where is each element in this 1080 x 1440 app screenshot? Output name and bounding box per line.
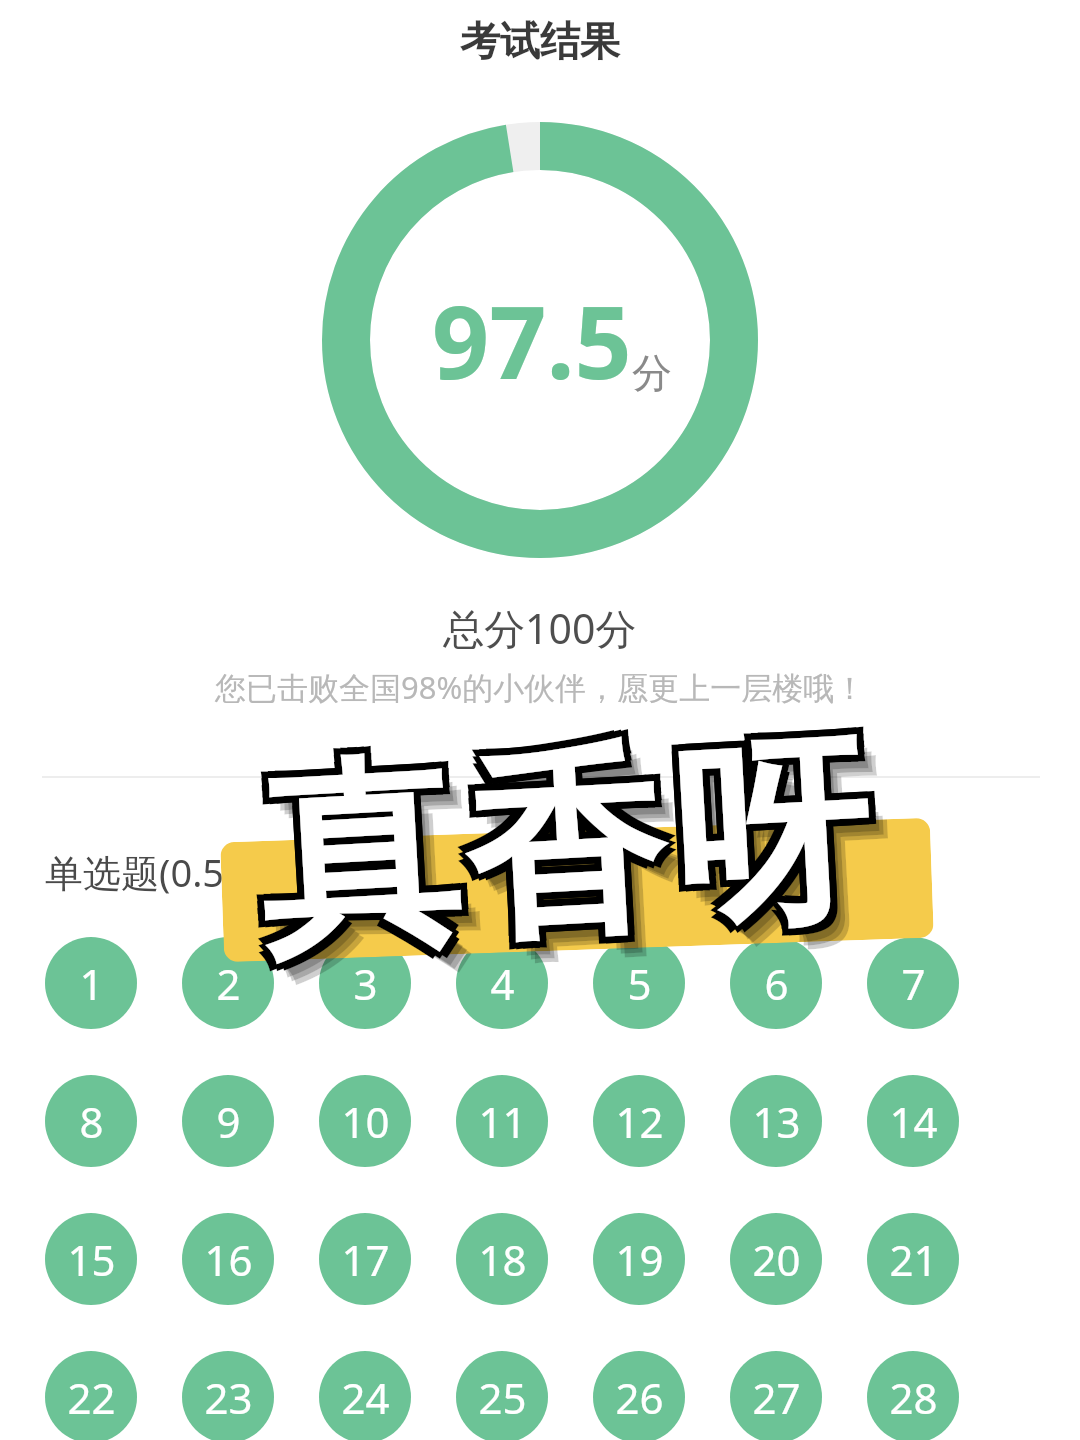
staticText: 97.5	[432, 272, 632, 408]
button[interactable]: 15	[45, 1213, 137, 1305]
button[interactable]: 17	[319, 1213, 411, 1305]
staticText: 真香呀	[268, 726, 899, 1012]
button[interactable]: 7	[867, 937, 959, 1029]
staticText: 总分100分	[443, 600, 637, 656]
button[interactable]: 24	[319, 1351, 411, 1440]
staticText: 17	[341, 1231, 390, 1288]
button[interactable]: 9	[182, 1075, 274, 1167]
staticText: 分	[632, 348, 672, 398]
staticText: 真香呀	[242, 712, 873, 998]
staticText: 真香呀	[248, 698, 879, 984]
staticText: 真香呀	[241, 698, 872, 984]
staticText: 真香呀	[248, 705, 879, 991]
staticText: 真香呀	[255, 698, 886, 984]
button[interactable]: 23	[182, 1351, 274, 1440]
staticText: 20	[752, 1231, 801, 1288]
staticText: 真香呀	[259, 718, 890, 1004]
staticText: 2	[216, 955, 241, 1012]
staticText: 真香呀	[263, 722, 894, 1008]
staticText: 真香呀	[256, 711, 887, 998]
staticText: 26	[615, 1369, 664, 1426]
button[interactable]: 11	[456, 1075, 548, 1167]
staticText: 7	[901, 955, 926, 1012]
staticText: 考试结果	[460, 16, 620, 66]
staticText: 15	[67, 1231, 116, 1288]
staticText: 24	[341, 1369, 390, 1426]
staticText: 9	[216, 1093, 241, 1150]
button[interactable]: 5	[593, 937, 685, 1029]
staticText: 25	[478, 1369, 527, 1426]
staticText: 1	[79, 955, 104, 1012]
staticText: 14	[889, 1093, 938, 1150]
staticText: 3	[353, 955, 378, 1012]
staticText: 18	[478, 1231, 527, 1288]
button[interactable]: 27	[730, 1351, 822, 1440]
button[interactable]: 12	[593, 1075, 685, 1167]
button[interactable]: 18	[456, 1213, 548, 1305]
staticText: 8	[79, 1093, 104, 1150]
button[interactable]: 3	[319, 937, 411, 1029]
staticText: 12	[615, 1093, 664, 1150]
button[interactable]: 26	[593, 1351, 685, 1440]
button[interactable]: 25	[456, 1351, 548, 1440]
staticText: 真香呀	[249, 712, 880, 998]
staticText: 19	[615, 1231, 664, 1288]
staticText: 单选题(0.5分/题)	[45, 846, 326, 898]
staticText: 11	[478, 1093, 527, 1150]
button[interactable]: 2	[182, 937, 274, 1029]
button[interactable]: 20	[730, 1213, 822, 1305]
staticText: 6	[764, 955, 789, 1012]
staticText: 28	[889, 1369, 938, 1426]
staticText: 您已击败全国98%的小伙伴，愿更上一层楼哦！	[215, 666, 866, 708]
staticText: 27	[752, 1369, 801, 1426]
staticText: 真香呀	[241, 705, 873, 991]
staticText: 13	[752, 1093, 801, 1150]
button[interactable]: 8	[45, 1075, 137, 1167]
staticText: 23	[204, 1369, 253, 1426]
button[interactable]: 21	[867, 1213, 959, 1305]
button[interactable]: 13	[730, 1075, 822, 1167]
button[interactable]: 28	[867, 1351, 959, 1440]
button[interactable]: 16	[182, 1213, 274, 1305]
button[interactable]: 10	[319, 1075, 411, 1167]
staticText: 22	[67, 1369, 116, 1426]
staticText: 真香呀	[255, 705, 886, 991]
staticText: 16	[204, 1231, 253, 1288]
staticText: 10	[341, 1093, 390, 1150]
button[interactable]: 22	[45, 1351, 137, 1440]
button[interactable]: 6	[730, 937, 822, 1029]
button[interactable]: 14	[867, 1075, 959, 1167]
staticText: 4	[490, 955, 515, 1012]
button[interactable]: 19	[593, 1213, 685, 1305]
button[interactable]: 1	[45, 937, 137, 1029]
staticText: 5	[627, 955, 652, 1012]
button[interactable]: 4	[456, 937, 548, 1029]
staticText: 21	[889, 1231, 938, 1288]
